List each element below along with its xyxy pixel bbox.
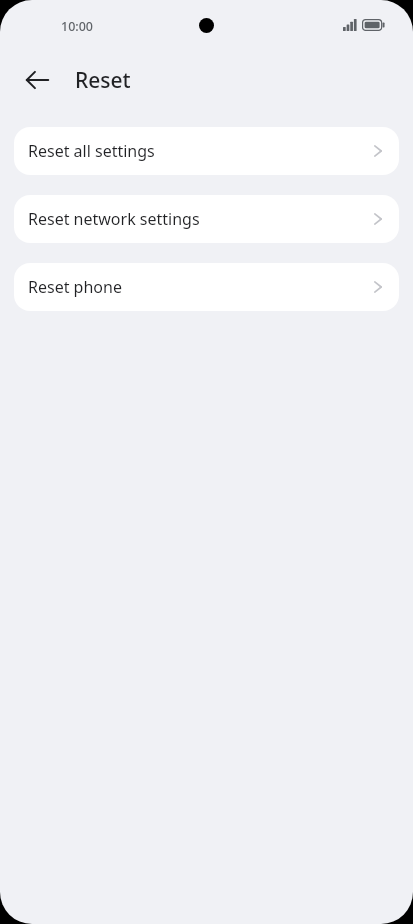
staticText: Reset phone — [28, 276, 373, 298]
staticText: Reset — [75, 66, 131, 95]
button[interactable]: Reset all settings — [14, 127, 399, 175]
staticText: Reset all settings — [28, 140, 373, 162]
staticText: 10:00 — [61, 18, 94, 35]
button[interactable]: Back — [18, 61, 56, 99]
staticText: Reset network settings — [28, 208, 373, 230]
button[interactable]: Reset network settings — [14, 195, 399, 243]
button[interactable]: Reset phone — [14, 263, 399, 311]
